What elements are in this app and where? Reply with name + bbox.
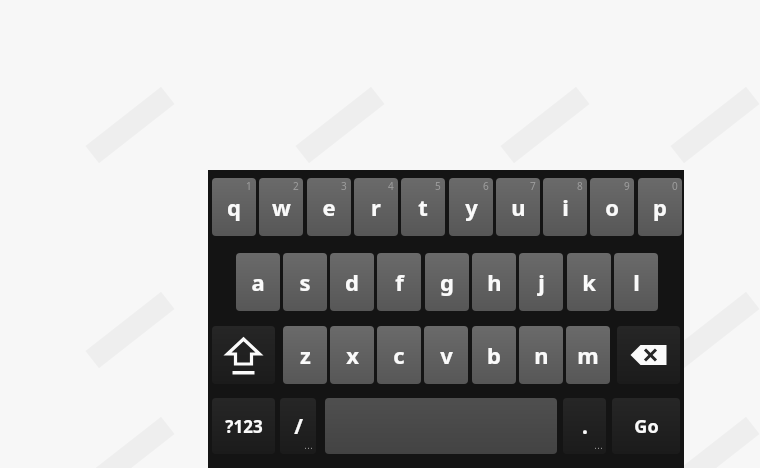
- staticText: d: [345, 267, 359, 297]
- staticText: h: [487, 267, 502, 297]
- button[interactable]: a: [236, 253, 280, 311]
- button[interactable]: Backspace: [617, 326, 680, 384]
- staticText: r: [371, 192, 381, 222]
- button[interactable]: l: [614, 253, 658, 311]
- staticText: s: [299, 267, 311, 297]
- button[interactable]: h: [472, 253, 516, 311]
- button[interactable]: e: [307, 178, 351, 236]
- staticText: g: [440, 267, 454, 297]
- staticText: 6: [483, 179, 489, 193]
- staticText: e: [322, 192, 336, 222]
- button[interactable]: f: [377, 253, 421, 311]
- staticText: b: [487, 340, 501, 370]
- staticText: o: [605, 192, 619, 222]
- button[interactable]: Go: [612, 398, 680, 454]
- staticText: 0: [672, 179, 678, 193]
- staticText: n: [534, 340, 549, 370]
- button[interactable]: Shift: [212, 326, 275, 384]
- staticText: 5: [435, 179, 441, 193]
- staticText: k: [582, 267, 596, 297]
- button[interactable]: .: [563, 398, 606, 454]
- button[interactable]: t: [401, 178, 445, 236]
- staticText: u: [511, 192, 526, 222]
- staticText: 3: [341, 179, 347, 193]
- staticText: f: [395, 267, 404, 297]
- button[interactable]: q: [212, 178, 256, 236]
- staticText: c: [393, 340, 405, 370]
- button[interactable]: k: [567, 253, 611, 311]
- button[interactable]: r: [354, 178, 398, 236]
- staticText: ⋯: [594, 443, 603, 453]
- staticText: q: [227, 192, 241, 222]
- button[interactable]: g: [425, 253, 469, 311]
- button[interactable]: y: [449, 178, 493, 236]
- staticText: z: [300, 340, 311, 370]
- staticText: i: [562, 192, 569, 222]
- staticText: 2: [293, 179, 299, 193]
- staticText: .: [582, 412, 588, 441]
- button[interactable]: w: [259, 178, 303, 236]
- staticText: j: [538, 267, 545, 297]
- staticText: a: [251, 267, 265, 297]
- staticText: p: [653, 192, 667, 222]
- staticText: t: [418, 192, 428, 222]
- staticText: w: [272, 192, 291, 222]
- button[interactable]: m: [566, 326, 610, 384]
- staticText: ?123: [225, 415, 263, 438]
- button[interactable]: p: [638, 178, 682, 236]
- staticText: v: [440, 340, 453, 370]
- button[interactable]: c: [377, 326, 421, 384]
- button[interactable]: d: [330, 253, 374, 311]
- button[interactable]: z: [283, 326, 327, 384]
- staticText: y: [465, 192, 478, 222]
- button[interactable]: ?123: [212, 398, 275, 454]
- staticText: /: [294, 412, 303, 441]
- staticText: ⋯: [304, 443, 313, 453]
- staticText: 9: [624, 179, 630, 193]
- button[interactable]: o: [590, 178, 634, 236]
- button[interactable]: v: [424, 326, 468, 384]
- staticText: 1: [246, 179, 252, 193]
- button[interactable]: x: [330, 326, 374, 384]
- staticText: 8: [577, 179, 583, 193]
- button[interactable]: b: [472, 326, 516, 384]
- button[interactable]: s: [283, 253, 327, 311]
- button[interactable]: /: [280, 398, 316, 454]
- staticText: 4: [388, 179, 394, 193]
- staticText: Go: [634, 414, 659, 439]
- staticText: x: [346, 340, 359, 370]
- staticText: l: [633, 267, 640, 297]
- button[interactable]: i: [543, 178, 587, 236]
- staticText: 7: [530, 179, 536, 193]
- button[interactable]: Space: [325, 398, 557, 454]
- button[interactable]: u: [496, 178, 540, 236]
- button[interactable]: n: [519, 326, 563, 384]
- button[interactable]: j: [519, 253, 563, 311]
- staticText: m: [577, 340, 599, 370]
